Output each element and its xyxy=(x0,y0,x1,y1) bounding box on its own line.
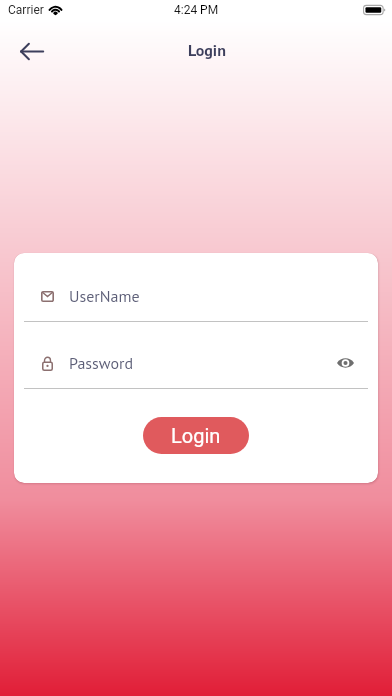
staticText: UserName xyxy=(69,286,140,307)
button[interactable]: UserName xyxy=(14,285,378,307)
staticText: 4:24 PM xyxy=(174,3,219,17)
staticText: Password xyxy=(69,353,134,374)
staticText: Login xyxy=(188,40,226,61)
staticText: Login xyxy=(171,424,221,447)
button[interactable]: Login xyxy=(143,417,249,454)
button[interactable]: Password xyxy=(14,352,378,374)
staticText: Carrier xyxy=(8,3,44,17)
button[interactable]: Back xyxy=(10,29,54,73)
button[interactable]: Show password xyxy=(332,352,358,374)
